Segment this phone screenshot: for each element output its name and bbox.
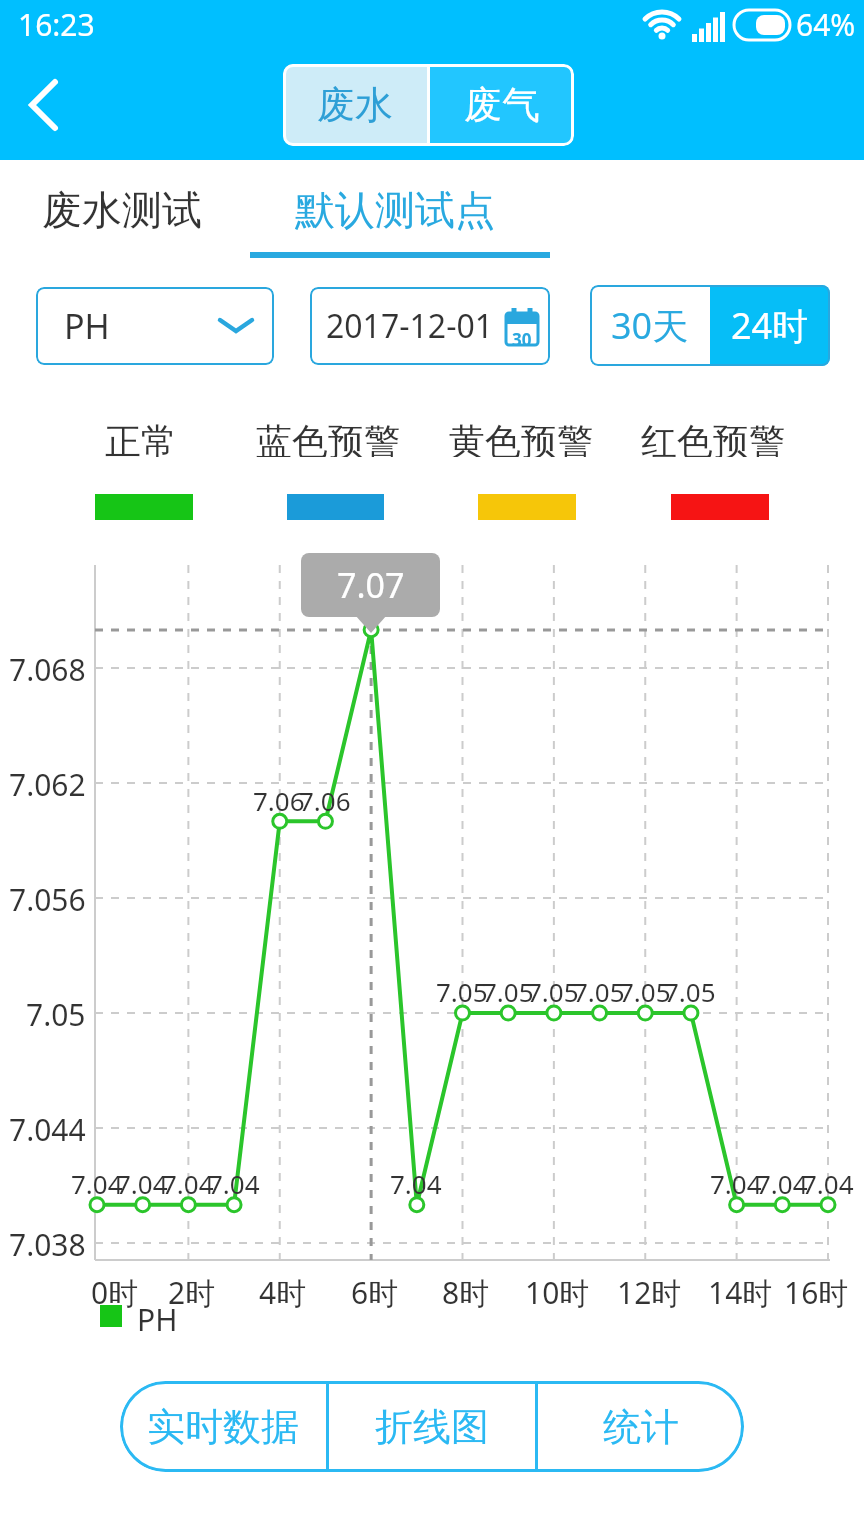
button[interactable]: PH: [36, 287, 274, 365]
staticText: 蓝色预警: [256, 419, 400, 457]
staticText: 7.05: [482, 974, 534, 1008]
staticText: 7.044: [9, 1109, 86, 1147]
staticText: 正常: [105, 419, 177, 457]
staticText: 废水测试: [42, 185, 202, 235]
staticText: 7.07: [337, 562, 405, 608]
staticText: 折线图: [375, 1403, 489, 1451]
staticText: 12时: [617, 1272, 682, 1310]
staticText: 7.04: [162, 1166, 214, 1200]
staticText: 7.05: [26, 994, 86, 1032]
staticText: 7.04: [390, 1166, 442, 1200]
staticText: 7.05: [573, 974, 625, 1008]
button[interactable]: 30天: [590, 285, 710, 366]
staticText: 30天: [611, 301, 689, 350]
staticText: 默认测试点: [295, 185, 495, 235]
staticText: PH: [137, 1299, 178, 1333]
button[interactable]: [10, 70, 80, 140]
staticText: 14时: [708, 1272, 773, 1310]
staticText: 废水: [317, 81, 393, 129]
staticText: 16:23: [18, 4, 95, 44]
staticText: 7.06: [299, 783, 351, 817]
staticText: 7.04: [208, 1166, 260, 1200]
button[interactable]: 折线图: [329, 1381, 535, 1472]
staticText: 黄色预警: [449, 419, 593, 457]
button[interactable]: 废气: [430, 64, 574, 146]
staticText: 2时: [168, 1272, 216, 1310]
button[interactable]: 默认测试点: [248, 170, 541, 250]
staticText: 30: [512, 328, 532, 350]
staticText: 7.05: [664, 974, 716, 1008]
staticText: 7.05: [436, 974, 488, 1008]
staticText: 16时: [784, 1272, 849, 1310]
staticText: 废气: [464, 81, 540, 129]
button[interactable]: 24时: [710, 285, 830, 366]
staticText: 7.068: [9, 649, 86, 687]
button[interactable]: 废水: [283, 64, 427, 146]
button[interactable]: 废水测试: [12, 170, 232, 250]
staticText: 6时: [351, 1272, 399, 1310]
button[interactable]: 统计: [538, 1381, 744, 1472]
staticText: 7.062: [9, 764, 86, 802]
staticText: 7.05: [619, 974, 671, 1008]
staticText: 7.05: [527, 974, 579, 1008]
staticText: PH: [64, 303, 110, 349]
button[interactable]: 实时数据: [120, 1381, 326, 1472]
staticText: 7.038: [9, 1224, 86, 1262]
staticText: 实时数据: [147, 1403, 299, 1451]
staticText: 7.04: [756, 1166, 808, 1200]
staticText: 统计: [603, 1403, 679, 1451]
staticText: 红色预警: [641, 419, 785, 457]
staticText: 7.04: [802, 1166, 854, 1200]
staticText: 2017-12-01: [326, 304, 494, 348]
staticText: 7.06: [253, 783, 305, 817]
staticText: 0时: [91, 1272, 139, 1310]
staticText: 24时: [731, 301, 809, 350]
staticText: 64%: [796, 4, 856, 44]
button[interactable]: 2017-12-01: [310, 287, 550, 365]
staticText: 8时: [442, 1272, 490, 1310]
staticText: 7.056: [9, 879, 86, 917]
staticText: 10时: [525, 1272, 590, 1310]
staticText: 4时: [259, 1272, 307, 1310]
staticText: 7.04: [71, 1166, 123, 1200]
staticText: 7.04: [710, 1166, 762, 1200]
staticText: 7.04: [116, 1166, 168, 1200]
